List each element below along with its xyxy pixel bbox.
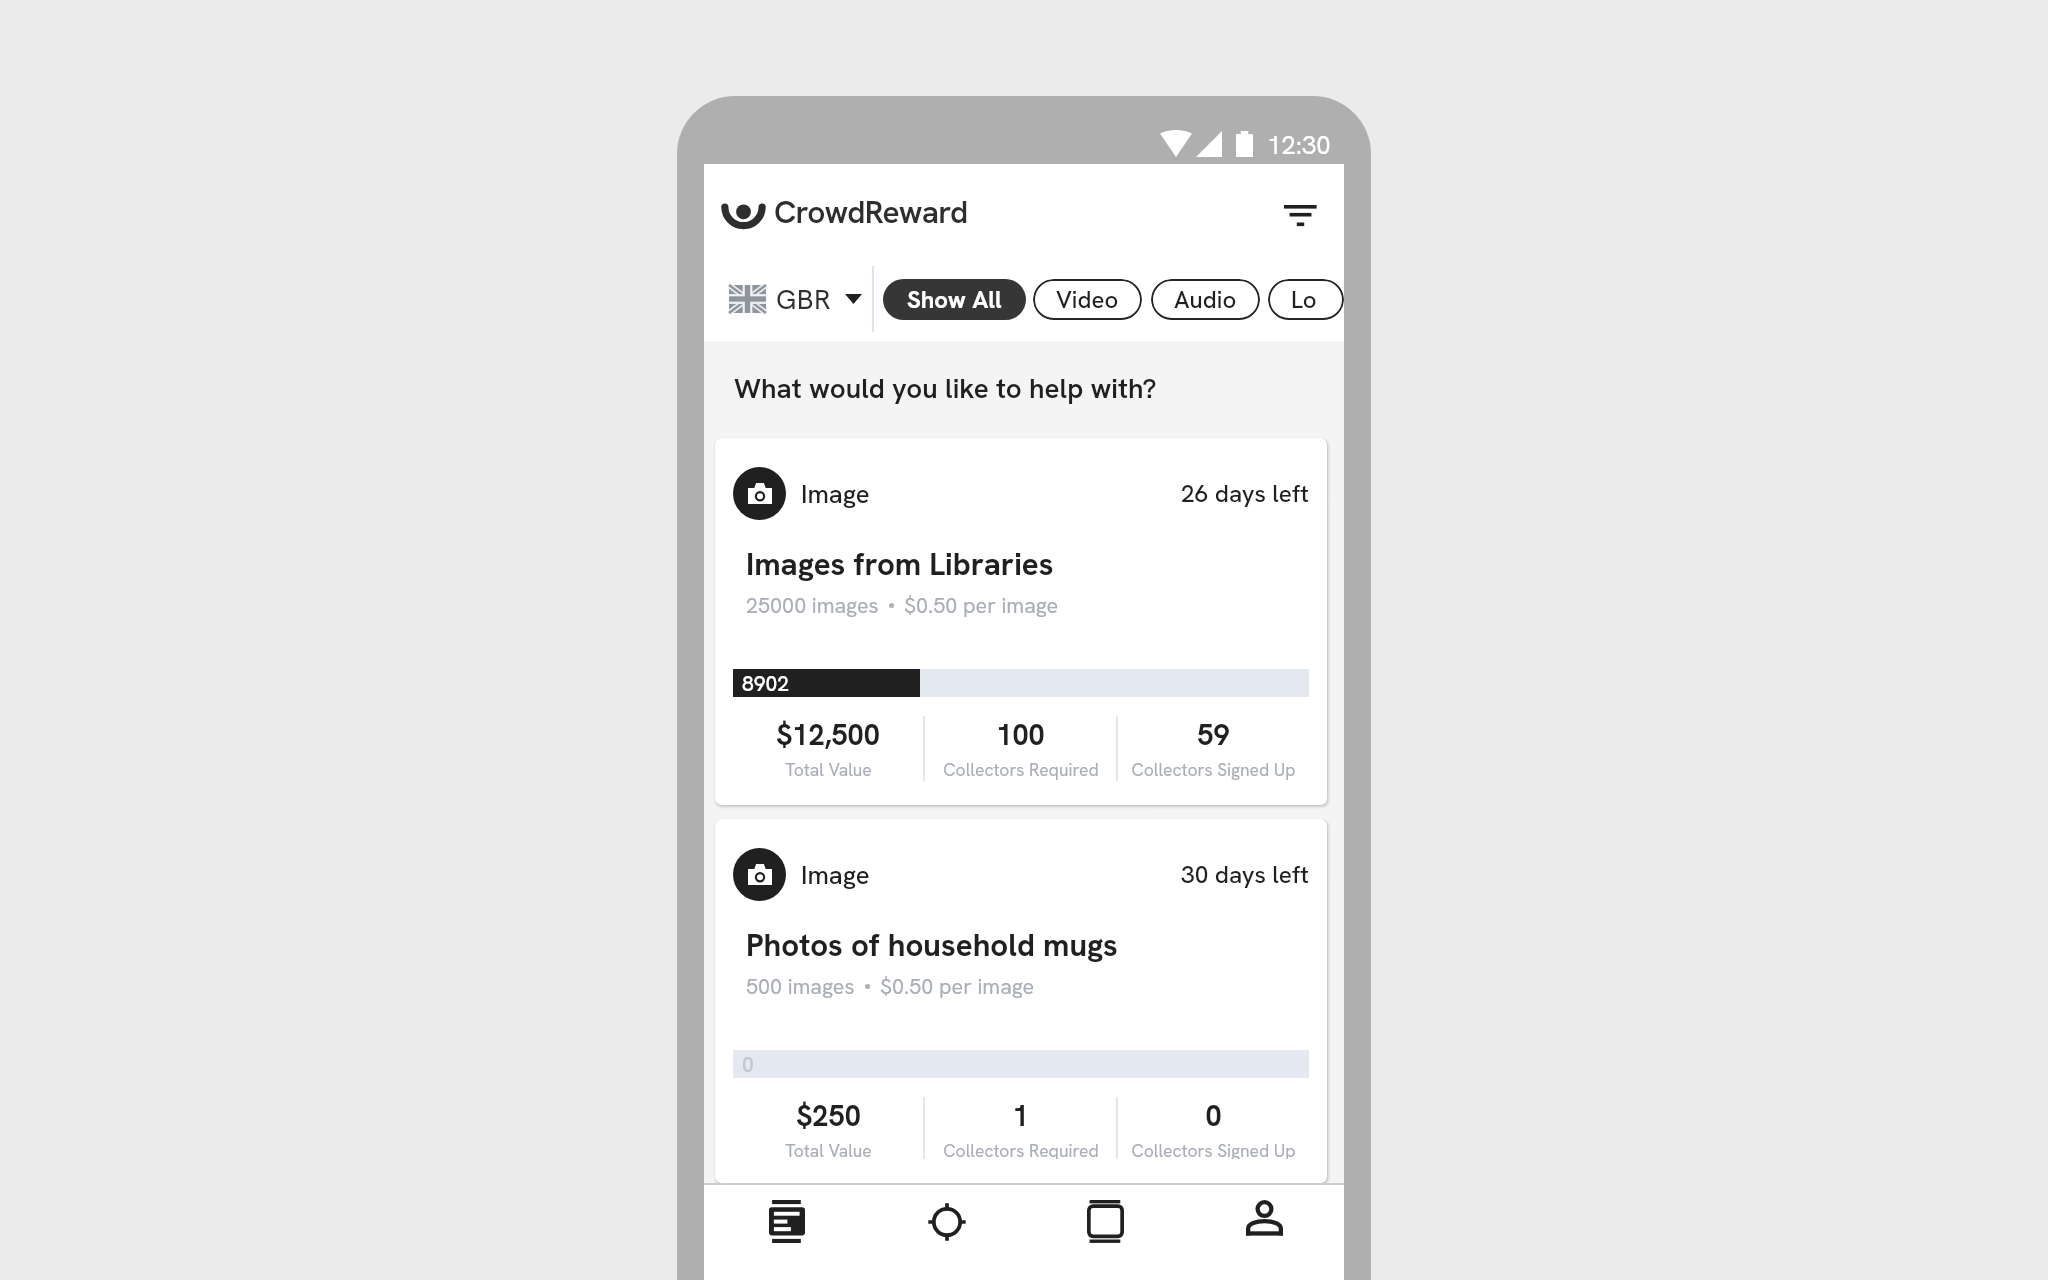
staticText: Image: [801, 858, 870, 891]
staticText: Collectors Signed Up: [1131, 758, 1296, 781]
staticText: Collectors Required: [943, 1139, 1099, 1159]
button[interactable]: Profile: [1185, 1185, 1344, 1280]
staticText: GBR: [776, 281, 832, 317]
staticText: 26 days left: [1181, 478, 1309, 510]
staticText: Collectors Required: [943, 758, 1099, 781]
button[interactable]: GBR: [729, 281, 862, 317]
staticText: Video: [1056, 284, 1119, 315]
button[interactable]: Image: [715, 819, 1327, 1183]
staticText: 25000 images: [746, 591, 879, 619]
staticText: 0: [1205, 1097, 1222, 1135]
staticText: 8902: [742, 670, 790, 697]
staticText: Audio: [1174, 284, 1237, 315]
button[interactable]: Feed: [707, 1185, 867, 1280]
button[interactable]: CrowdReward: [721, 188, 968, 234]
staticText: CrowdReward: [774, 191, 968, 232]
staticText: 30 days left: [1181, 859, 1309, 891]
staticText: Total Value: [785, 758, 872, 781]
staticText: Photos of household mugs: [746, 925, 1118, 966]
staticText: 0: [742, 1051, 754, 1078]
button[interactable]: Audio: [1151, 279, 1260, 320]
staticText: 12:30: [1267, 128, 1331, 161]
staticText: Total Value: [785, 1139, 872, 1159]
staticText: $0.50 per image: [904, 591, 1059, 619]
button[interactable]: Tasks: [1026, 1185, 1185, 1280]
staticText: Local: [1291, 284, 1321, 315]
staticText: Collectors Signed Up: [1131, 1139, 1296, 1159]
staticText: 1: [1012, 1097, 1029, 1135]
staticText: $12,500: [776, 716, 880, 754]
button[interactable]: Filter: [1269, 180, 1331, 242]
button[interactable]: Video: [1033, 279, 1142, 320]
button[interactable]: Show All: [883, 279, 1026, 320]
staticText: 59: [1197, 716, 1230, 754]
button[interactable]: Image: [715, 438, 1327, 805]
staticText: What would you like to help with?: [734, 370, 1157, 406]
staticText: Images from Libraries: [746, 544, 1054, 585]
staticText: 500 images: [746, 972, 855, 1000]
staticText: $250: [796, 1097, 861, 1135]
staticText: $0.50 per image: [880, 972, 1035, 1000]
staticText: 100: [996, 716, 1045, 754]
button[interactable]: Discover: [867, 1185, 1026, 1280]
staticText: Image: [801, 477, 870, 510]
staticText: Show All: [907, 284, 1002, 315]
button[interactable]: Local: [1268, 279, 1344, 320]
